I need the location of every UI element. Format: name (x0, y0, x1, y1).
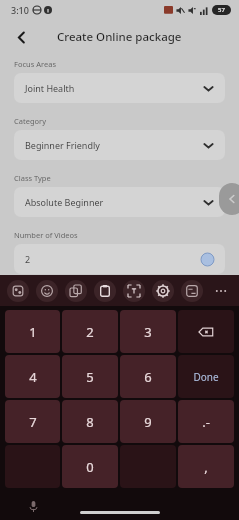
staticText: Absolute Beginner (25, 196, 104, 208)
button[interactable]: Beginner Friendly (14, 130, 225, 160)
staticText: , (204, 458, 208, 476)
staticText: Focus Areas (14, 59, 56, 69)
staticText: 9 (144, 413, 152, 431)
button[interactable]: Back (8, 24, 34, 50)
button[interactable]: , (178, 445, 234, 488)
button[interactable]: Translate (181, 280, 203, 302)
staticText: 3 (144, 323, 152, 341)
button[interactable]: 2 (14, 244, 225, 274)
staticText: 6 (144, 368, 152, 386)
button[interactable]: Text scan (123, 280, 145, 302)
button[interactable]: 8 (62, 400, 118, 443)
button[interactable]: Voice input (23, 496, 43, 516)
button[interactable]: Sticker (7, 280, 29, 302)
button[interactable]: Settings (152, 280, 174, 302)
button[interactable]: 3 (120, 310, 176, 353)
button[interactable]: Done (178, 355, 234, 398)
staticText: 3:10 (11, 4, 29, 16)
button[interactable]: 6 (120, 355, 176, 398)
button[interactable]: 4 (5, 355, 60, 398)
staticText: Create Online package (57, 29, 182, 45)
staticText: 7 (29, 413, 37, 431)
button[interactable]: Emoji (36, 280, 58, 302)
button[interactable]: Clipboard (94, 280, 116, 302)
staticText: Number of Videos (14, 230, 78, 240)
staticText: .- (202, 413, 210, 431)
button[interactable]: 1 (5, 310, 60, 353)
button[interactable]: 2 (62, 310, 118, 353)
staticText: Category (14, 116, 46, 126)
staticText: 2 (86, 323, 94, 341)
button[interactable]: Joint Health (14, 73, 225, 103)
button[interactable]: 9 (120, 400, 176, 443)
other: Back gesture (219, 183, 239, 215)
staticText: Beginner Friendly (25, 139, 100, 151)
staticText: 1 (29, 323, 37, 341)
staticText: 8 (86, 413, 94, 431)
button[interactable]: More options (210, 280, 232, 302)
button[interactable]: Clipboard history (65, 280, 87, 302)
button[interactable]: Absolute Beginner (14, 187, 225, 217)
staticText: 4 (29, 368, 37, 386)
staticText: Joint Health (25, 82, 75, 94)
staticText: 0 (86, 458, 94, 476)
staticText: Done (193, 370, 219, 384)
staticText: Class Type (14, 173, 51, 183)
staticText: 57 (218, 6, 225, 14)
button[interactable]: .- (178, 400, 234, 443)
button[interactable]: 7 (5, 400, 60, 443)
button[interactable]: 5 (62, 355, 118, 398)
staticText: 5 (86, 368, 94, 386)
staticText: 2 (25, 253, 31, 265)
button[interactable]: Backspace (178, 310, 234, 353)
button[interactable]: 0 (62, 445, 118, 488)
